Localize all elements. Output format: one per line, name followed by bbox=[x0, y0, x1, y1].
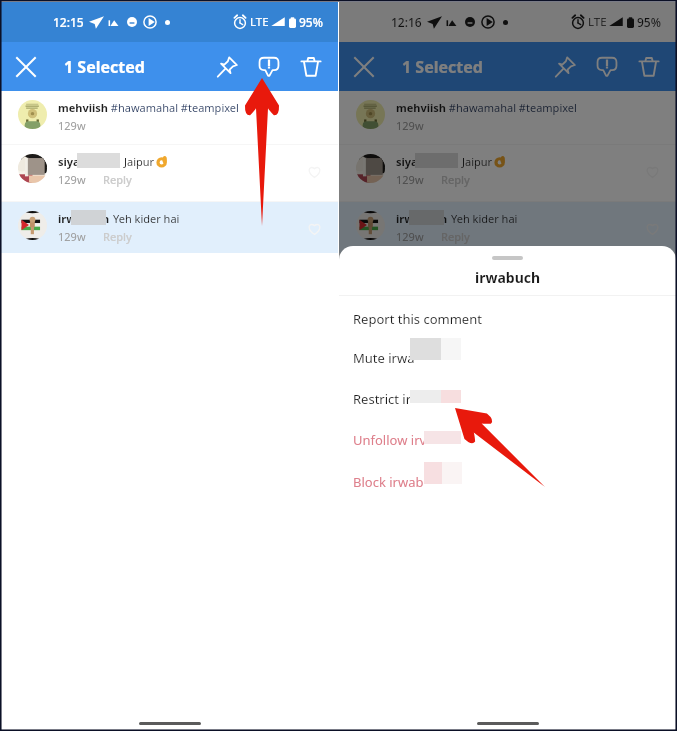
staticText: Block irwab bbox=[353, 473, 424, 491]
staticText: 129w bbox=[396, 118, 424, 133]
staticText: irwabuch bbox=[475, 268, 541, 287]
button[interactable]: Unfollow irv bbox=[339, 420, 676, 460]
staticText: Restrict ir bbox=[353, 390, 412, 408]
staticText: LTE bbox=[588, 14, 607, 30]
button[interactable]: Restrict ir bbox=[339, 379, 676, 419]
button[interactable]: Block irwab bbox=[339, 462, 676, 502]
staticText: Report this comment bbox=[353, 310, 482, 328]
staticText: Jaipur bbox=[462, 154, 493, 169]
staticText: Reply bbox=[103, 229, 132, 244]
staticText: mehviish bbox=[396, 100, 446, 115]
button[interactable]: Mute irwa bbox=[339, 338, 676, 378]
staticText: Yeh kider hai bbox=[451, 211, 518, 226]
button[interactable]: Close bbox=[339, 42, 389, 91]
button[interactable]: mehviish bbox=[1, 91, 338, 144]
button[interactable]: siya bbox=[1, 145, 338, 201]
button[interactable]: Delete bbox=[290, 42, 332, 91]
staticText: irwabuch bbox=[58, 211, 110, 226]
button[interactable]: Report bbox=[248, 42, 290, 91]
staticText: Reply bbox=[103, 172, 132, 187]
staticText: 1 Selected bbox=[64, 56, 145, 78]
staticText: nimittt bbox=[80, 154, 119, 169]
button[interactable]: Report this comment bbox=[339, 299, 676, 339]
staticText: siya bbox=[58, 154, 80, 169]
button[interactable]: irwabuch bbox=[339, 202, 676, 253]
staticText: Mute irwa bbox=[353, 349, 415, 367]
staticText: Reply bbox=[441, 229, 470, 244]
button[interactable]: Delete bbox=[628, 42, 670, 91]
button[interactable]: mehviish bbox=[339, 91, 676, 144]
staticText: 95% bbox=[637, 14, 661, 30]
staticText: 129w bbox=[58, 118, 86, 133]
staticText: Unfollow irv bbox=[353, 431, 427, 449]
button[interactable]: Report bbox=[586, 42, 628, 91]
staticText: irwabuch bbox=[396, 211, 448, 226]
staticText: 12:16 bbox=[391, 14, 422, 30]
staticText: nimittt bbox=[418, 154, 457, 169]
staticText: Yeh kider hai bbox=[113, 211, 180, 226]
staticText: Reply bbox=[441, 172, 470, 187]
staticText: 129w bbox=[58, 172, 86, 187]
staticText: #hawamahal #teampixel bbox=[446, 100, 577, 115]
button[interactable]: irwabuch bbox=[1, 202, 338, 253]
button[interactable]: siya bbox=[339, 145, 676, 201]
staticText: 129w bbox=[396, 172, 424, 187]
button[interactable]: Pin bbox=[544, 42, 586, 91]
staticText: 129w bbox=[396, 229, 424, 244]
button[interactable]: Close bbox=[1, 42, 51, 91]
staticText: 12:15 bbox=[53, 14, 84, 30]
staticText: 95% bbox=[299, 14, 323, 30]
staticText: #hawamahal #teampixel bbox=[108, 100, 239, 115]
button[interactable]: Pin bbox=[206, 42, 248, 91]
staticText: 129w bbox=[58, 229, 86, 244]
staticText: Jaipur bbox=[124, 154, 155, 169]
staticText: LTE bbox=[250, 14, 269, 30]
staticText: mehviish bbox=[58, 100, 108, 115]
staticText: 1 Selected bbox=[402, 56, 483, 78]
staticText: siya bbox=[396, 154, 418, 169]
